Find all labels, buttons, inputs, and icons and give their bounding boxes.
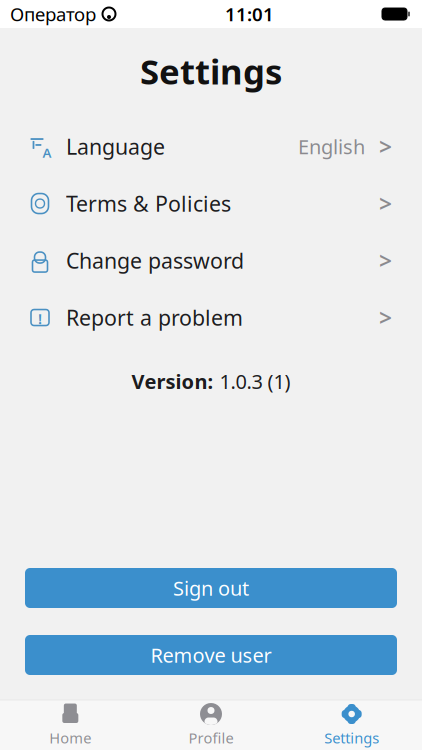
staticText: Settings (324, 728, 379, 747)
button[interactable]: Sign out (25, 568, 397, 608)
button[interactable]: Home (0, 700, 141, 750)
button[interactable]: ! (0, 289, 422, 346)
button[interactable]: Settings (281, 700, 422, 750)
button[interactable]: Profile (141, 700, 281, 750)
staticText: > (379, 245, 392, 276)
button[interactable]: Remove user (25, 635, 397, 675)
staticText: Remove user (150, 642, 271, 668)
staticText: > (379, 131, 392, 162)
staticText: Terms & Policies (66, 189, 231, 218)
staticText: Settings (140, 48, 282, 94)
staticText: Оператор (10, 2, 96, 26)
staticText: A (42, 144, 51, 161)
staticText: 11:01 (225, 2, 274, 26)
staticText: Change password (66, 246, 244, 275)
staticText: Version: (131, 368, 213, 395)
staticText: > (379, 302, 392, 333)
staticText: Sign out (173, 575, 249, 601)
staticText: Report a problem (66, 303, 243, 332)
button[interactable]: Terms & Policies (0, 175, 422, 232)
staticText: > (379, 188, 392, 219)
staticText: 1.0.3 (1) (219, 368, 290, 395)
staticText: English (298, 133, 365, 160)
staticText: Home (49, 728, 91, 747)
staticText: ! (38, 309, 42, 328)
button[interactable]: A (0, 118, 422, 175)
staticText: Language (66, 132, 165, 161)
staticText: Profile (188, 728, 233, 747)
button[interactable]: Change password (0, 232, 422, 289)
